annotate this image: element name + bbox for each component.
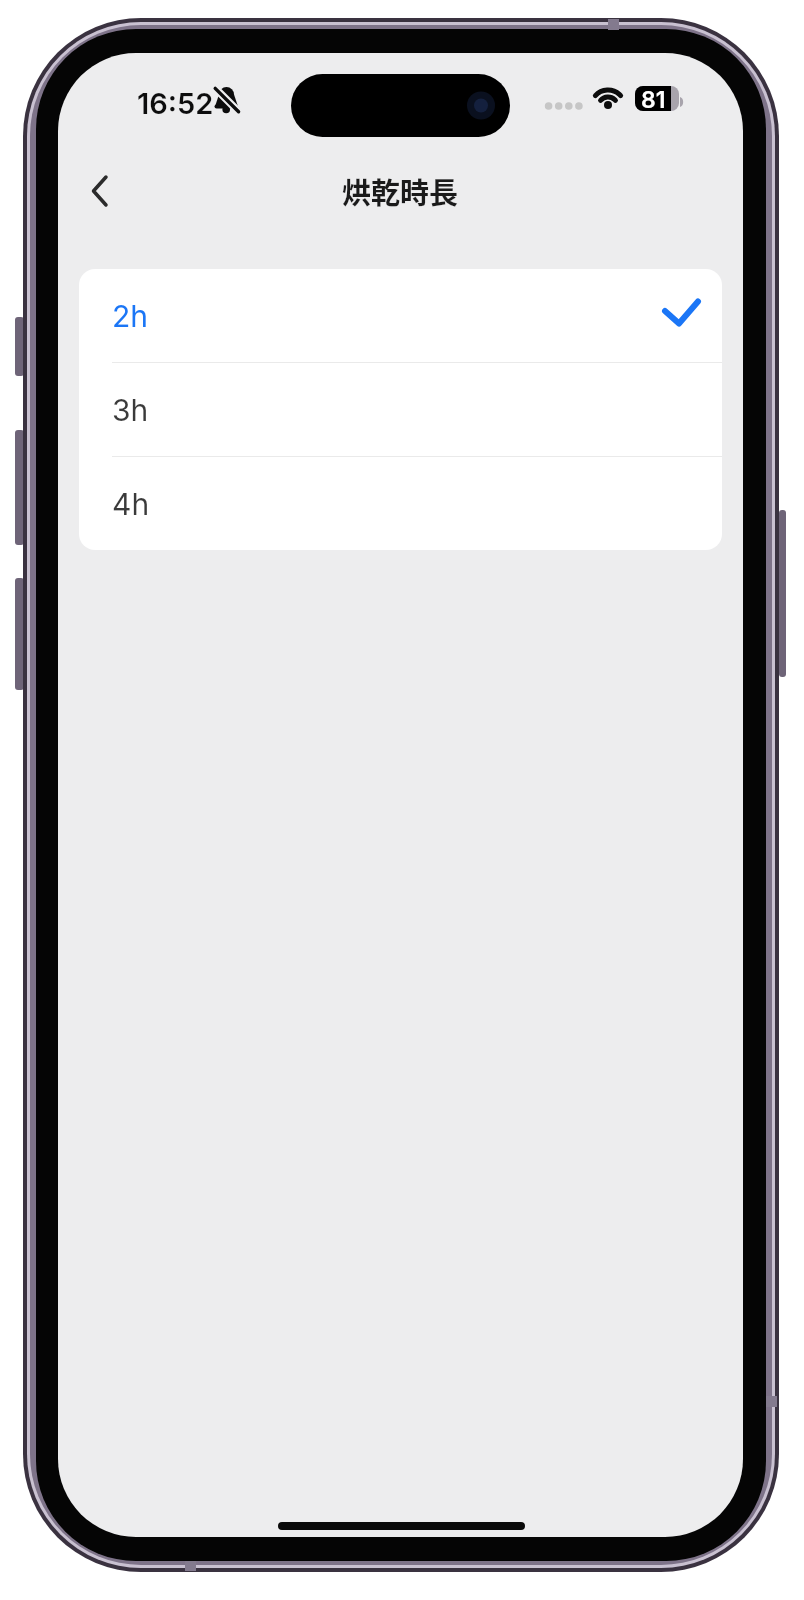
staticText: 4h	[112, 486, 150, 522]
staticText: 2h	[112, 298, 149, 334]
staticText: 烘乾時長	[342, 170, 459, 212]
staticText: 81	[641, 86, 666, 111]
button[interactable]: 4h	[79, 457, 722, 550]
button[interactable]: 3h	[79, 363, 722, 456]
button[interactable]: 2h	[79, 269, 722, 362]
button[interactable]	[72, 163, 128, 219]
staticText: 16:52	[137, 86, 214, 116]
staticText: 3h	[112, 392, 149, 428]
